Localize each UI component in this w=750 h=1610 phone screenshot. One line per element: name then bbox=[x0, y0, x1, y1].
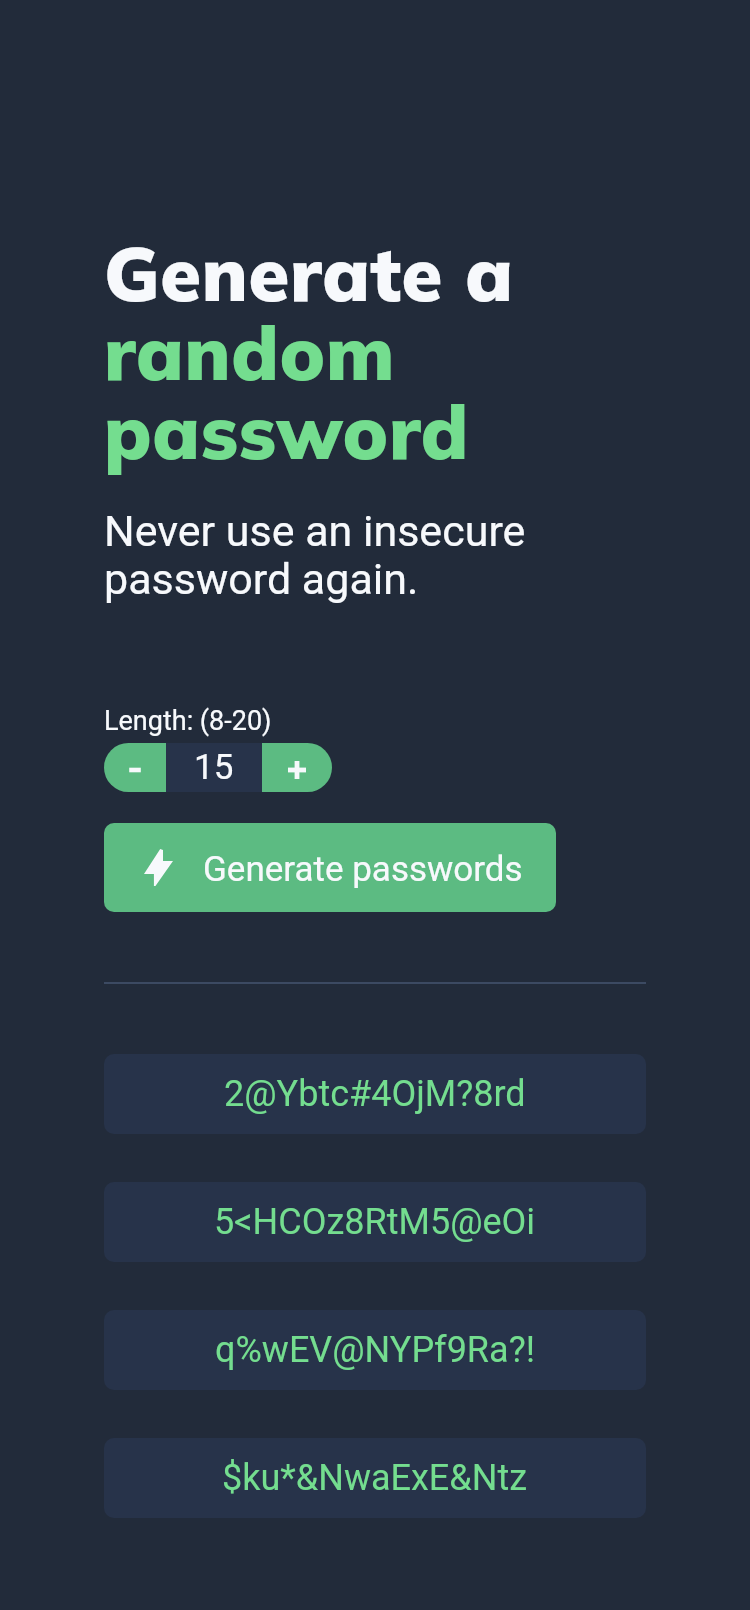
staticText: 2@Ybtc#4OjM?8rd bbox=[224, 1073, 526, 1115]
button[interactable]: q%wEV@NYPf9Ra?! bbox=[104, 1310, 646, 1390]
staticText: $ku*&NwaExE&Ntz bbox=[222, 1457, 528, 1499]
button[interactable]: Increase length bbox=[262, 743, 332, 792]
button[interactable]: 5<HCOz8RtM5@eOi bbox=[104, 1182, 646, 1262]
button[interactable]: Generate passwords bbox=[104, 823, 556, 912]
staticText: Length: (8-20) bbox=[104, 705, 272, 737]
staticText: 15 bbox=[194, 747, 234, 788]
button[interactable]: $ku*&NwaExE&Ntz bbox=[104, 1438, 646, 1518]
staticText: Generate passwords bbox=[203, 849, 523, 890]
staticText: 5<HCOz8RtM5@eOi bbox=[214, 1201, 536, 1243]
staticText: q%wEV@NYPf9Ra?! bbox=[215, 1329, 535, 1371]
staticText: Generate a random password bbox=[104, 238, 646, 475]
staticText: Never use an insecure password again. bbox=[104, 508, 646, 604]
button[interactable]: 2@Ybtc#4OjM?8rd bbox=[104, 1054, 646, 1134]
button[interactable]: Decrease length bbox=[104, 743, 166, 792]
